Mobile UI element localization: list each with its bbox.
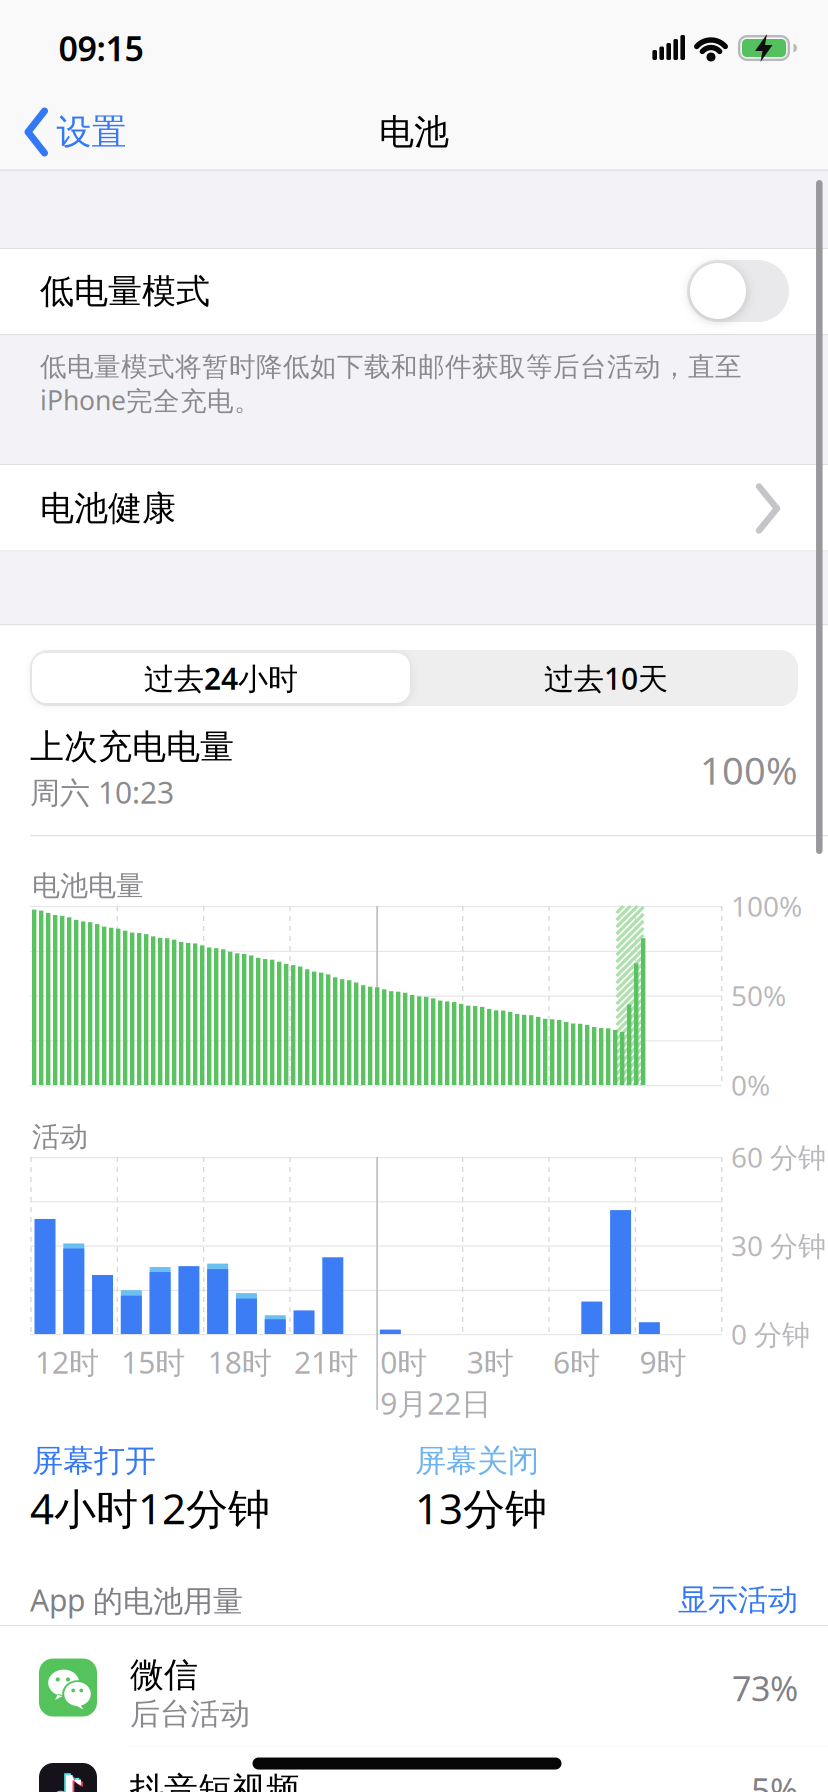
staticText: 21时 <box>294 1342 358 1382</box>
staticText: 18时 <box>208 1342 272 1382</box>
staticText: 13分钟 <box>415 1479 547 1537</box>
staticText: 100% <box>731 887 802 925</box>
staticText: 活动 <box>32 1119 88 1155</box>
staticText: 抖音短视频 <box>130 1769 300 1792</box>
staticText: 屏幕关闭 <box>415 1441 539 1481</box>
staticText: 后台活动 <box>130 1695 250 1733</box>
staticText: 4小时12分钟 <box>30 1479 270 1537</box>
button[interactable]: 返回设置 <box>25 110 126 154</box>
button[interactable]: 电池健康 <box>0 465 828 550</box>
staticText: 电池健康 <box>40 487 176 530</box>
staticText: 过去10天 <box>544 658 668 698</box>
staticText: App 的电池用量 <box>30 1579 243 1620</box>
staticText: 09:15 <box>58 25 143 71</box>
staticText: 过去24小时 <box>144 658 298 698</box>
staticText: 0时 <box>380 1342 427 1382</box>
staticText: 50% <box>731 976 786 1014</box>
button[interactable]: 过去24小时 <box>32 653 410 703</box>
staticText: 0 分钟 <box>731 1315 810 1353</box>
staticText: 低电量模式 <box>40 270 210 313</box>
button[interactable]: 微信 <box>0 1626 828 1746</box>
staticText: 15时 <box>121 1342 185 1382</box>
staticText: 9月22日 <box>380 1383 491 1423</box>
staticText: 电池电量 <box>32 868 144 904</box>
staticText: 微信 <box>130 1654 198 1696</box>
staticText: 设置 <box>56 110 126 154</box>
staticText: 9时 <box>639 1342 686 1382</box>
staticText: 0% <box>731 1066 770 1104</box>
staticText: 5% <box>751 1767 798 1792</box>
staticText: 30 分钟 <box>731 1226 826 1264</box>
staticText: 3时 <box>467 1342 514 1382</box>
staticText: 显示活动 <box>678 1581 798 1619</box>
staticText: 73% <box>732 1665 798 1711</box>
staticText: 电池 <box>379 110 449 154</box>
button[interactable]: 过去10天 <box>416 650 796 706</box>
staticText: 屏幕打开 <box>32 1441 156 1481</box>
button[interactable]: 抖音短视频 <box>0 1762 828 1792</box>
staticText: 100% <box>700 744 798 796</box>
staticText: 上次充电电量 <box>30 726 234 768</box>
button[interactable]: 低电量模式 <box>687 260 789 322</box>
staticText: iPhone完全充电。 <box>40 382 261 418</box>
button[interactable]: 显示活动 <box>498 1581 798 1619</box>
staticText: 周六 10:23 <box>30 772 174 812</box>
staticText: 60 分钟 <box>731 1138 826 1176</box>
staticText: 低电量模式将暂时降低如下载和邮件获取等后台活动，直至 <box>40 350 742 384</box>
staticText: 6时 <box>553 1342 600 1382</box>
staticText: 12时 <box>35 1342 99 1382</box>
